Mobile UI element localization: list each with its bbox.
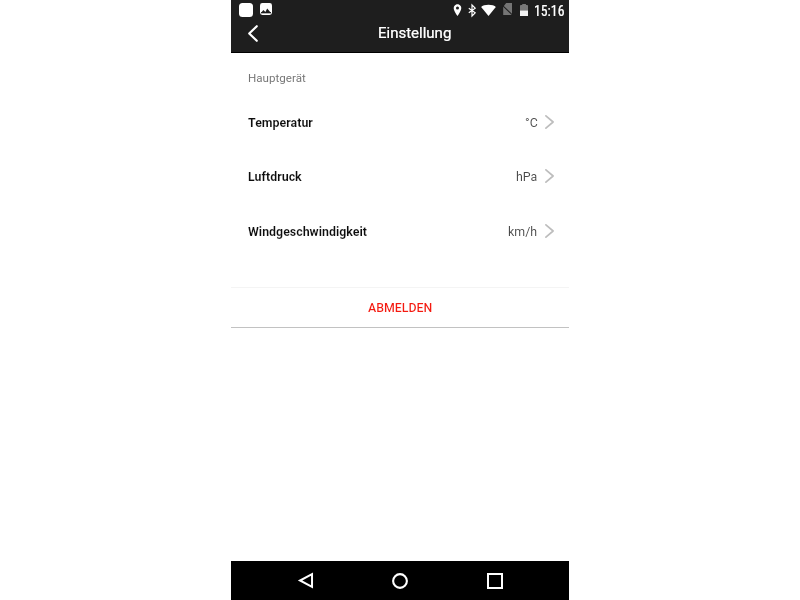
button[interactable]: Windgeschwindigkeit bbox=[231, 205, 569, 259]
staticText: °C bbox=[525, 115, 538, 130]
staticText: Einstellung bbox=[378, 24, 452, 42]
staticText: ABMELDEN bbox=[368, 301, 433, 315]
button[interactable]: Temperatur bbox=[231, 96, 569, 150]
button[interactable]: ABMELDEN bbox=[231, 288, 569, 327]
button[interactable]: Recents bbox=[476, 561, 514, 600]
staticText: 15:16 bbox=[534, 3, 565, 19]
button[interactable]: Home bbox=[381, 561, 419, 600]
button[interactable]: Back bbox=[238, 18, 268, 48]
staticText: Hauptgerät bbox=[248, 71, 306, 85]
button[interactable]: Luftdruck bbox=[231, 150, 569, 204]
button[interactable]: Back bbox=[287, 561, 325, 600]
staticText: Windgeschwindigkeit bbox=[248, 224, 367, 239]
staticText: km/h bbox=[508, 224, 538, 239]
staticText: hPa bbox=[516, 169, 538, 184]
staticText: Temperatur bbox=[248, 115, 313, 130]
staticText: Luftdruck bbox=[248, 169, 302, 184]
